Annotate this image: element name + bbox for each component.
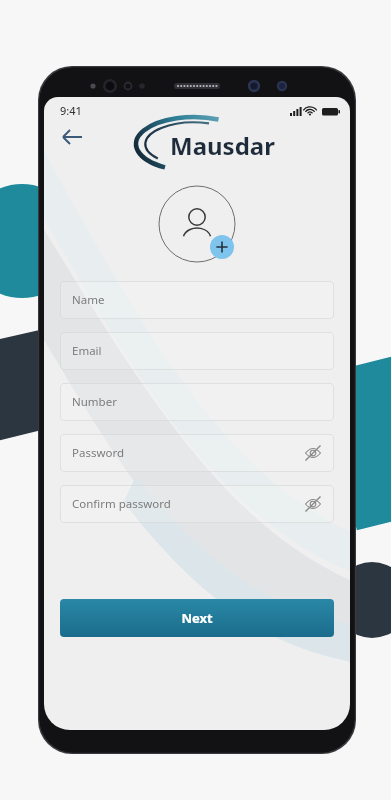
button[interactable]: Name [60,281,334,319]
staticText: Mausdar [170,129,275,162]
button[interactable]: Password [60,434,334,472]
button[interactable]: Confirm password [60,485,334,523]
button[interactable]: Email [60,332,334,370]
staticText: 9:41 [60,103,82,118]
button[interactable]: Number [60,383,334,421]
staticText: Next [181,609,213,627]
button[interactable]: Add profile photo [158,185,236,263]
button[interactable]: Toggle password visibility [302,493,324,515]
staticText: Password [72,445,125,461]
button[interactable]: Back [54,121,92,153]
button[interactable]: Toggle password visibility [302,442,324,464]
staticText: Number [72,394,117,410]
button[interactable]: Next [60,599,334,637]
staticText: Confirm password [72,496,171,512]
staticText: Email [72,343,102,359]
staticText: Name [72,292,105,308]
